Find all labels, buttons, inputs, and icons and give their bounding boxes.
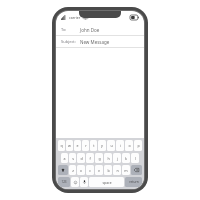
staticText: p (137, 143, 140, 148)
staticText: carrier (69, 15, 81, 20)
staticText: o (128, 143, 131, 148)
staticText: f (89, 156, 91, 161)
staticText: John Doe (80, 27, 100, 33)
staticText: e (76, 143, 79, 148)
staticText: u (110, 143, 113, 148)
button[interactable]: b (104, 165, 112, 175)
staticText: q (60, 143, 63, 148)
staticText: Subject: (61, 39, 76, 44)
staticText: m (124, 168, 128, 173)
button[interactable]: n (113, 165, 121, 175)
staticText: i (120, 143, 121, 148)
button[interactable]: v (95, 165, 103, 175)
button[interactable]: To: (56, 24, 144, 35)
staticText: h (107, 156, 110, 161)
staticText: b (107, 168, 110, 173)
button[interactable]: f (86, 153, 94, 163)
staticText: l (135, 156, 136, 161)
button[interactable]: y (98, 140, 106, 151)
staticText: New Message (80, 39, 110, 45)
button[interactable]: p (134, 140, 142, 151)
staticText: r (85, 143, 87, 148)
staticText: a (63, 156, 66, 161)
staticText: y (101, 143, 103, 148)
staticText: return (129, 180, 139, 184)
button[interactable]: space (89, 177, 124, 187)
button[interactable]: t (90, 140, 97, 151)
staticText: 123 (61, 180, 67, 184)
staticText: s (72, 156, 74, 161)
button[interactable]: 123 (58, 177, 70, 187)
staticText: t (93, 143, 95, 148)
button[interactable]: w (66, 140, 73, 151)
button[interactable]: k (122, 153, 130, 163)
button[interactable]: c (86, 165, 94, 175)
button[interactable]: j (113, 153, 121, 163)
button[interactable]: Dictate (80, 177, 88, 187)
button[interactable]: g (95, 153, 103, 163)
staticText: c (89, 168, 91, 173)
button[interactable]: Shift (58, 165, 68, 175)
button[interactable]: Backspace (131, 165, 142, 175)
button[interactable]: m (122, 165, 130, 175)
button[interactable]: u (107, 140, 115, 151)
button[interactable]: Subject: (56, 36, 144, 47)
button[interactable]: d (77, 153, 85, 163)
button[interactable]: l (131, 153, 139, 163)
button[interactable]: i (116, 140, 124, 151)
staticText: To: (61, 27, 67, 32)
button[interactable]: s (69, 153, 76, 163)
staticText: x (80, 168, 82, 173)
button[interactable]: Emoji (71, 177, 79, 187)
button[interactable]: o (125, 140, 133, 151)
button[interactable]: a (61, 153, 68, 163)
staticText: d (80, 156, 83, 161)
staticText: j (117, 156, 118, 161)
button[interactable]: x (77, 165, 85, 175)
staticText: g (98, 156, 101, 161)
staticText: n (116, 168, 119, 173)
button[interactable]: q (58, 140, 65, 151)
staticText: v (98, 168, 100, 173)
button[interactable]: h (104, 153, 112, 163)
button[interactable]: e (74, 140, 81, 151)
staticText: space (102, 180, 112, 185)
staticText: z (72, 168, 74, 173)
button[interactable]: r (82, 140, 89, 151)
button[interactable]: return (125, 177, 142, 187)
staticText: w (68, 143, 71, 148)
button[interactable]: z (69, 165, 76, 175)
staticText: k (125, 156, 127, 161)
